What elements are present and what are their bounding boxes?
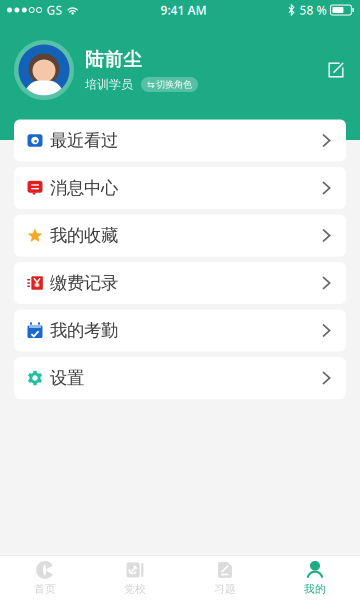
staticText: 我的 bbox=[304, 582, 326, 595]
button[interactable]: 我的考勤 bbox=[14, 309, 346, 351]
staticText: 9:41 AM bbox=[160, 2, 206, 18]
staticText: 首页 bbox=[34, 582, 56, 595]
staticText: 消息中心 bbox=[50, 177, 118, 199]
button[interactable]: 最近看过 bbox=[14, 119, 346, 161]
staticText: 最近看过 bbox=[50, 130, 118, 151]
staticText: 设置 bbox=[50, 367, 84, 389]
staticText: 缴费记录 bbox=[50, 272, 118, 294]
staticText: 陆前尘 bbox=[85, 48, 142, 71]
button[interactable]: 习题 bbox=[180, 556, 270, 600]
button[interactable]: 我的 bbox=[270, 556, 360, 600]
button[interactable]: 消息中心 bbox=[14, 167, 346, 209]
button[interactable]: ⇆ bbox=[141, 77, 198, 92]
button[interactable]: 首页 bbox=[0, 556, 90, 600]
button[interactable]: 我的收藏 bbox=[14, 214, 346, 256]
staticText: 58 % bbox=[299, 2, 326, 18]
button[interactable]: 党校 bbox=[90, 556, 180, 600]
button[interactable]: 缴费记录 bbox=[14, 262, 346, 304]
staticText: 习题 bbox=[214, 582, 236, 595]
staticText: GS bbox=[47, 2, 63, 18]
button[interactable]: 编辑资料 bbox=[325, 59, 347, 81]
button[interactable]: 设置 bbox=[14, 357, 346, 399]
staticText: 切换角色 bbox=[156, 79, 192, 90]
staticText: 我的收藏 bbox=[50, 225, 118, 246]
staticText: 我的考勤 bbox=[50, 320, 118, 341]
staticText: 培训学员 bbox=[85, 77, 133, 92]
staticText: 党校 bbox=[124, 582, 146, 595]
staticText: ⇆ bbox=[147, 79, 155, 90]
